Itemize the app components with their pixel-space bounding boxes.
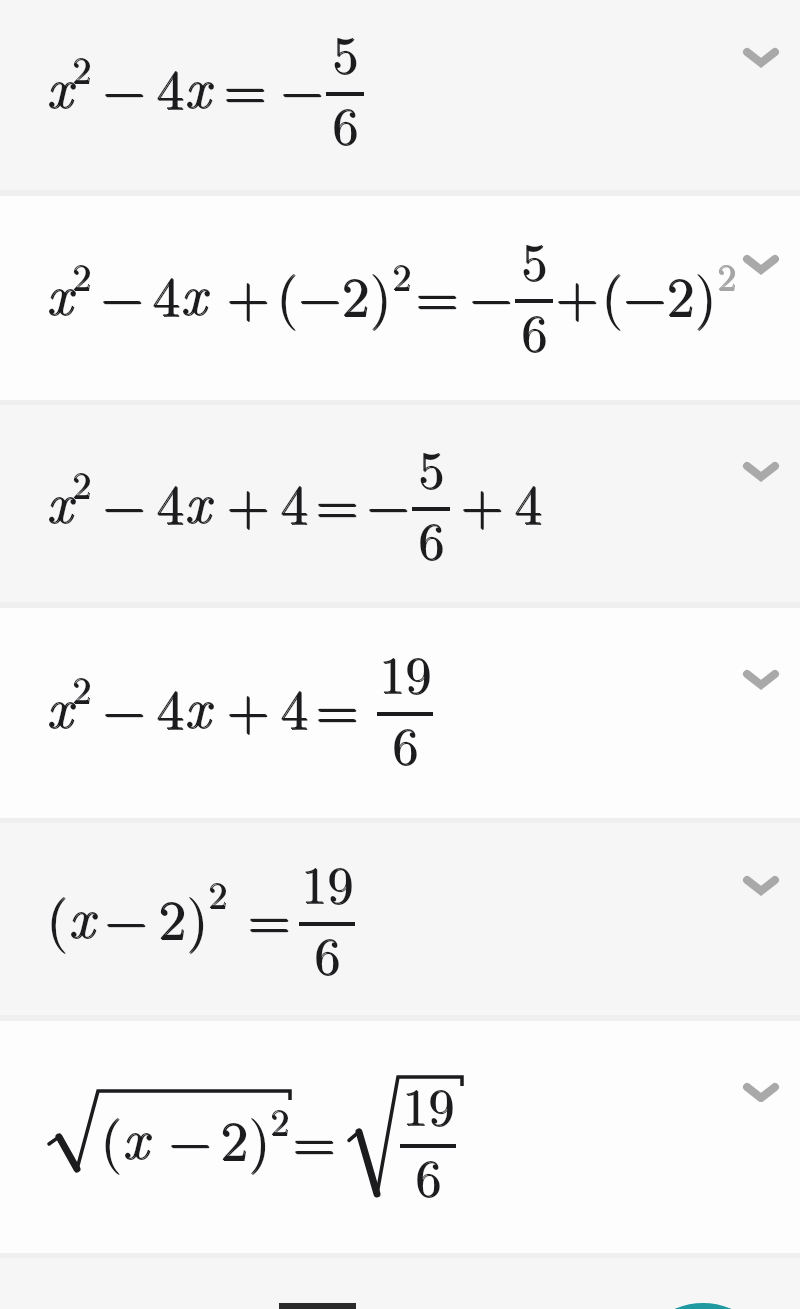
staticText: =: [292, 1098, 336, 1177]
staticText: x: [69, 875, 95, 954]
staticText: =: [224, 47, 268, 126]
staticText: 6: [333, 86, 360, 160]
staticText: 19: [301, 844, 354, 918]
staticText: 4: [152, 253, 180, 332]
staticText: 19: [302, 845, 355, 919]
staticText: 4: [280, 666, 308, 745]
staticText: +: [555, 253, 599, 332]
staticText: 2): [220, 1097, 270, 1176]
staticText: 4: [280, 461, 308, 540]
staticText: x: [185, 665, 211, 744]
staticText: =: [415, 253, 459, 332]
staticText: +: [226, 253, 270, 332]
staticText: =: [293, 1099, 337, 1178]
staticText: 6: [522, 293, 549, 367]
staticText: 6: [521, 292, 548, 366]
staticText: (−2): [601, 253, 717, 332]
staticText: (: [47, 877, 69, 956]
button[interactable]: [0, 1253, 800, 1309]
staticText: 2: [393, 248, 413, 302]
staticText: x: [46, 44, 72, 123]
staticText: 4: [515, 462, 543, 541]
staticText: +: [556, 254, 600, 333]
staticText: 5: [418, 429, 445, 503]
staticText: (−2): [277, 254, 393, 333]
staticText: 4: [157, 47, 185, 126]
staticText: 2): [159, 877, 209, 956]
staticText: −: [168, 1097, 212, 1176]
staticText: 4: [157, 667, 185, 746]
staticText: −: [104, 876, 148, 955]
staticText: 4: [514, 461, 542, 540]
button[interactable]: (: [0, 818, 800, 1021]
staticText: 4: [157, 462, 185, 541]
staticText: 5: [419, 430, 446, 504]
staticText: x: [46, 251, 72, 330]
staticText: x: [184, 664, 210, 743]
staticText: x: [123, 1096, 149, 1175]
button[interactable]: x: [0, 400, 800, 608]
staticText: 4: [156, 666, 184, 745]
staticText: +: [227, 462, 271, 541]
staticText: 2: [73, 661, 93, 715]
staticText: 2: [73, 41, 93, 95]
staticText: (−2): [602, 254, 718, 333]
button[interactable]: x: [0, 608, 800, 818]
staticText: (−2): [276, 253, 392, 332]
staticText: −: [367, 462, 411, 541]
staticText: 4: [281, 667, 309, 746]
staticText: x: [47, 45, 73, 124]
staticText: x: [185, 45, 211, 124]
staticText: =: [248, 877, 292, 956]
staticText: 5: [522, 222, 549, 296]
staticText: −: [102, 461, 146, 540]
staticText: −: [105, 877, 149, 956]
staticText: x: [180, 251, 206, 330]
staticText: x: [184, 459, 210, 538]
staticText: +: [227, 667, 271, 746]
staticText: +: [227, 254, 271, 333]
staticText: 19: [403, 1067, 456, 1141]
staticText: 2: [718, 248, 738, 302]
button[interactable]: x: [0, 196, 800, 400]
staticText: x: [181, 252, 207, 331]
staticText: x: [185, 460, 211, 539]
staticText: −: [101, 254, 145, 333]
button[interactable]: x: [0, 0, 800, 196]
staticText: −: [100, 253, 144, 332]
staticText: 6: [415, 1137, 442, 1211]
staticText: 6: [315, 916, 342, 990]
staticText: −: [103, 667, 147, 746]
staticText: 2: [72, 455, 92, 509]
staticText: 2): [221, 1098, 271, 1177]
staticText: (: [100, 1097, 122, 1176]
staticText: x: [68, 874, 94, 953]
button[interactable]: (: [0, 1021, 800, 1253]
staticText: x: [46, 459, 72, 538]
staticText: −: [366, 461, 410, 540]
staticText: =: [416, 254, 460, 333]
staticText: 4: [156, 46, 184, 125]
staticText: 2: [72, 247, 92, 301]
staticText: x: [47, 252, 73, 331]
staticText: −: [280, 46, 324, 125]
staticText: x: [46, 664, 72, 743]
staticText: 2: [72, 660, 92, 714]
staticText: 2: [271, 1093, 291, 1147]
staticText: 6: [418, 500, 445, 574]
staticText: 5: [332, 14, 359, 88]
staticText: =: [315, 666, 359, 745]
staticText: 6: [314, 915, 341, 989]
staticText: 19: [380, 635, 433, 709]
staticText: x: [47, 665, 73, 744]
staticText: 6: [393, 706, 420, 780]
staticText: (: [46, 876, 68, 955]
staticText: 5: [521, 221, 548, 295]
staticText: 2: [209, 866, 229, 920]
staticText: 4: [153, 254, 181, 333]
staticText: 19: [379, 634, 432, 708]
staticText: +: [461, 462, 505, 541]
staticText: 19: [402, 1066, 455, 1140]
staticText: =: [316, 462, 360, 541]
staticText: 2: [208, 865, 228, 919]
